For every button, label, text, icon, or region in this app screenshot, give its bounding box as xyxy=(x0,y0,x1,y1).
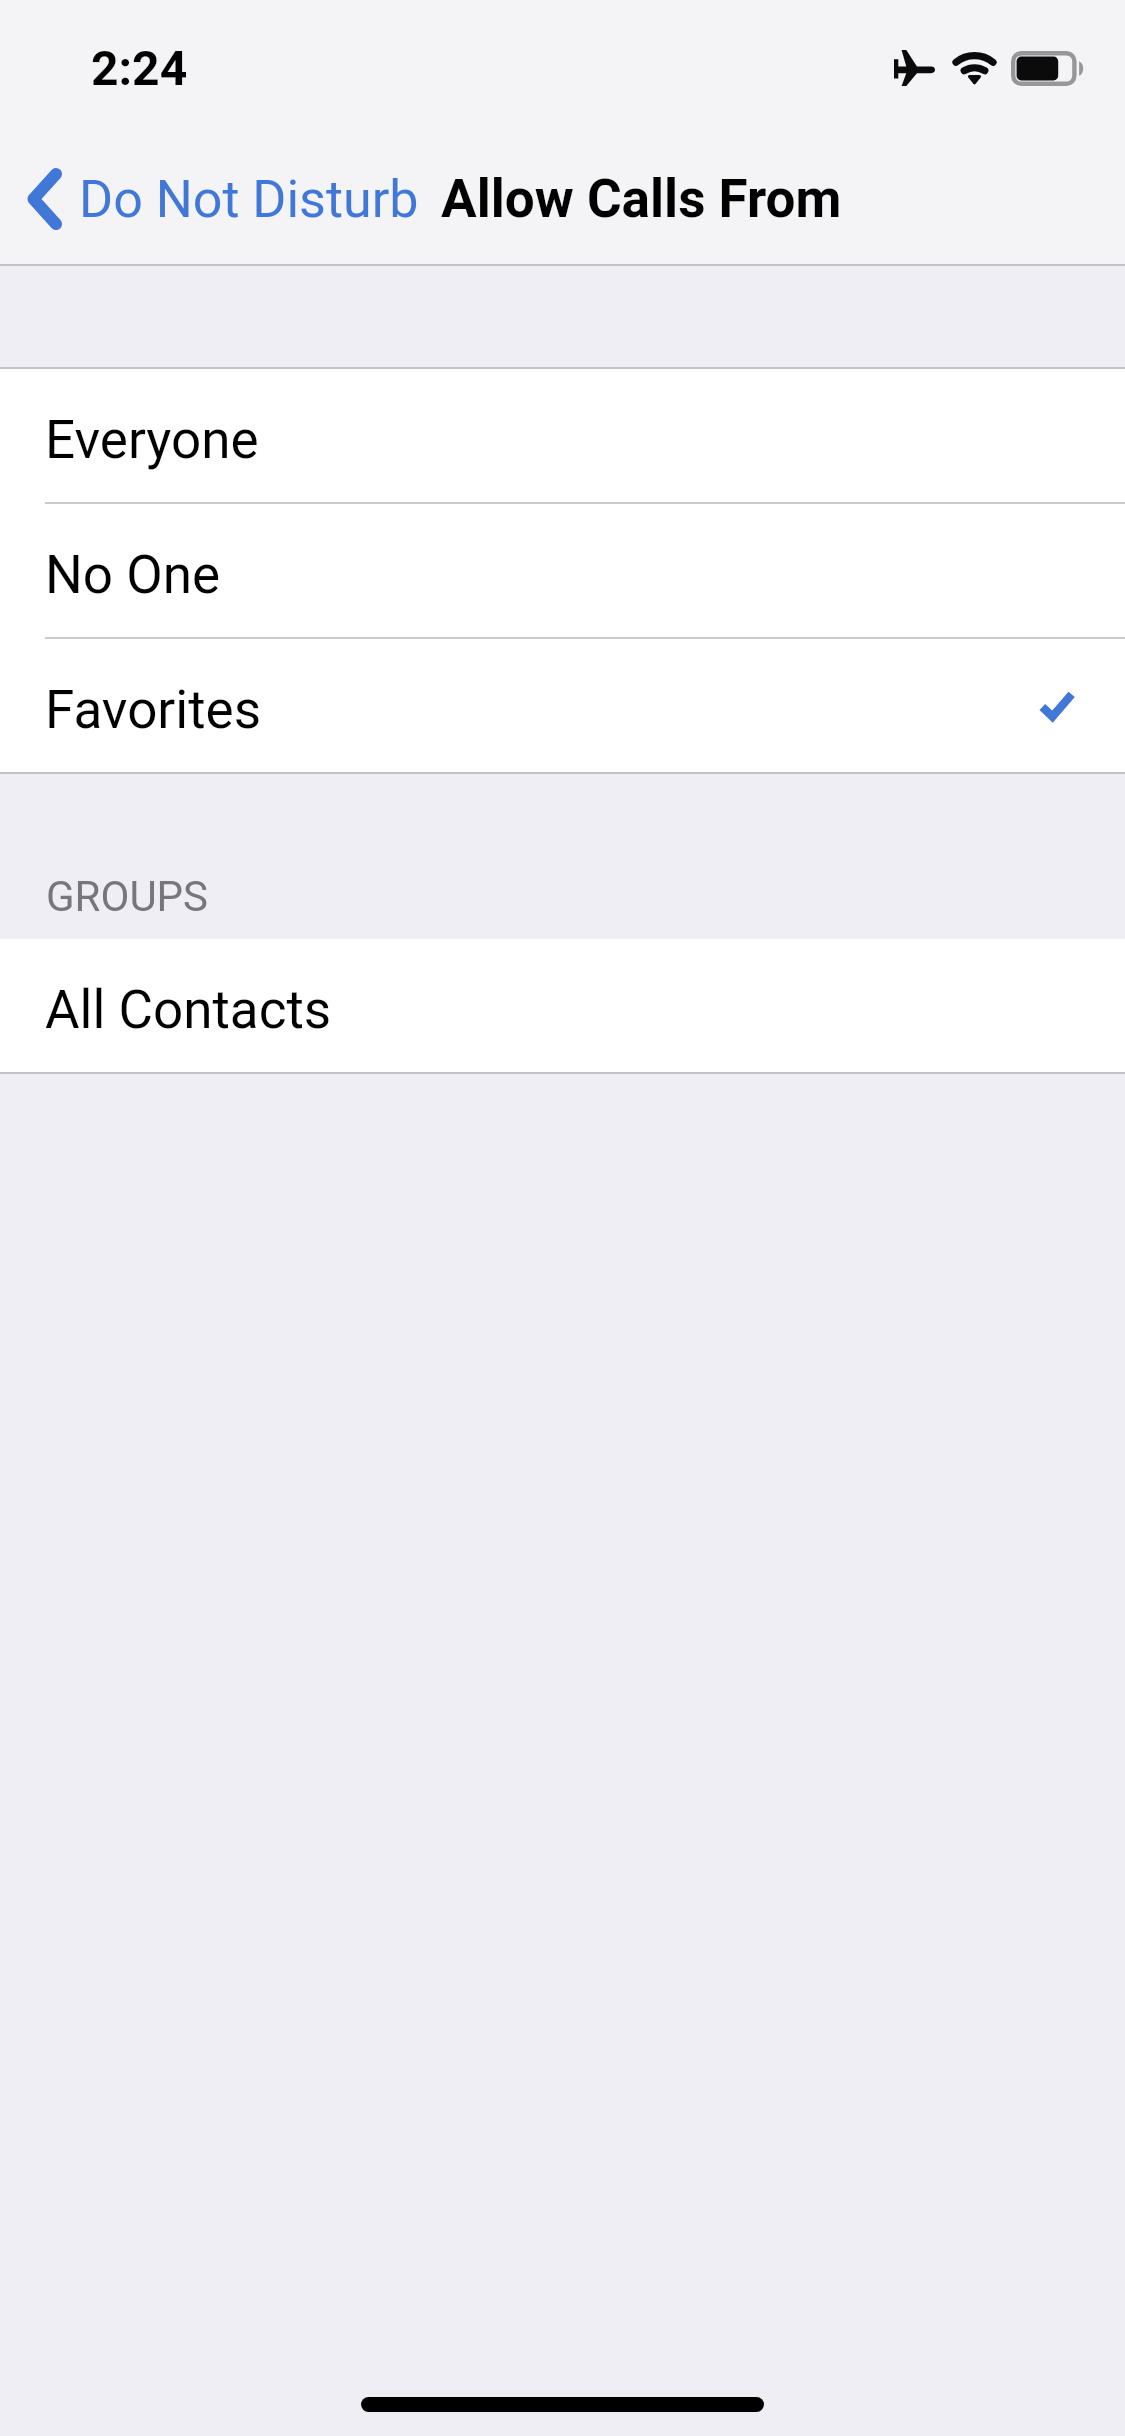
other: Selected xyxy=(1038,690,1076,721)
staticText: Favorites xyxy=(45,679,262,741)
other: Wi-Fi xyxy=(952,51,997,84)
other: Back xyxy=(26,168,62,230)
staticText: Allow Calls From xyxy=(441,168,842,230)
staticText: All Contacts xyxy=(45,979,332,1041)
staticText: 2:24 xyxy=(91,40,188,96)
button[interactable]: No One xyxy=(0,504,1125,637)
button[interactable]: Favorites xyxy=(0,639,1125,772)
staticText: Do Not Disturb xyxy=(79,169,419,230)
staticText: GROUPS xyxy=(46,872,209,921)
other: Battery xyxy=(1011,51,1085,86)
staticText: No One xyxy=(45,544,221,606)
button[interactable]: All Contacts xyxy=(0,939,1125,1072)
other: Airplane mode xyxy=(894,50,935,86)
button[interactable]: Back xyxy=(0,152,437,246)
staticText: Everyone xyxy=(45,409,259,471)
button[interactable]: Everyone xyxy=(0,369,1125,502)
